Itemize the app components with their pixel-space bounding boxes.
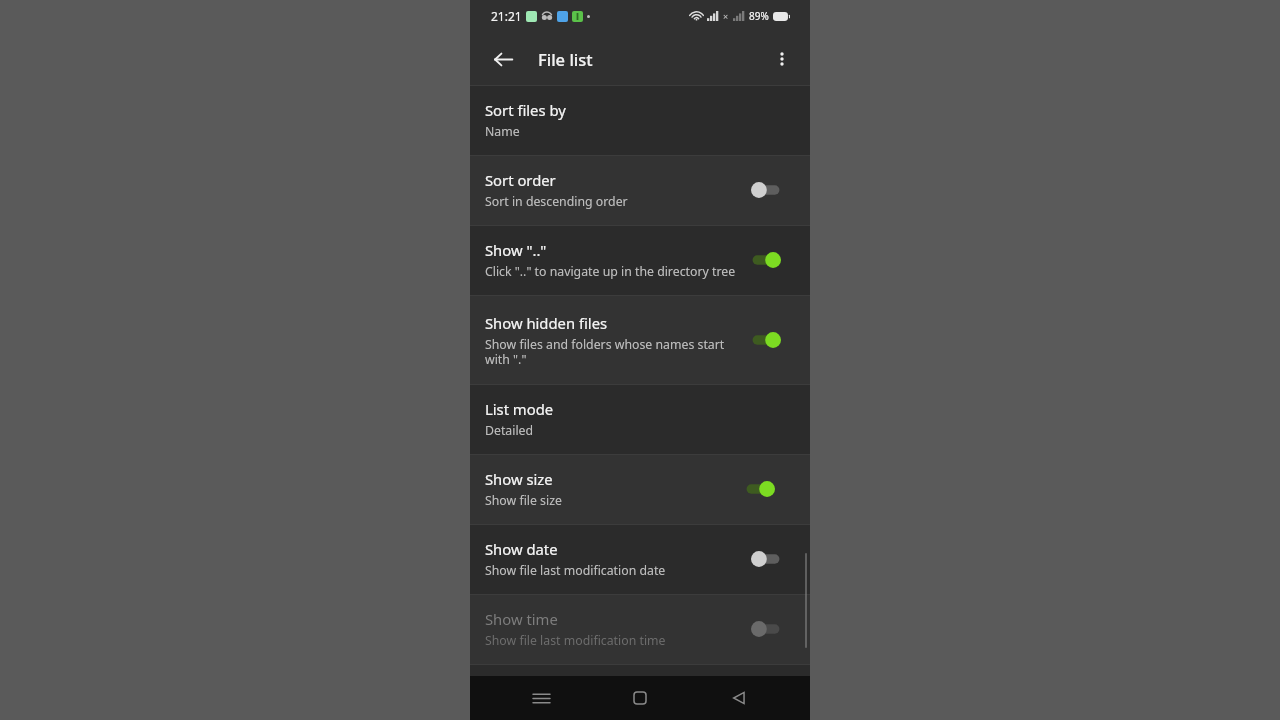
button[interactable]: Sort order [470, 155, 810, 225]
button[interactable]: Show ".." [470, 225, 810, 295]
button[interactable]: Home [612, 678, 668, 718]
staticText: Show file last modification date [485, 562, 666, 579]
button[interactable]: Recent apps [513, 678, 569, 718]
staticText: 89% [749, 9, 769, 23]
button[interactable]: Sort files by [470, 85, 810, 155]
staticText: Show file last modification time [485, 632, 666, 649]
button[interactable]: Show hidden files [470, 295, 810, 384]
button[interactable]: List mode [470, 384, 810, 454]
staticText: Show ".." [485, 240, 547, 260]
staticText: 21:21 [491, 8, 522, 24]
button[interactable]: Show time [744, 612, 788, 646]
staticText: Show time [485, 609, 558, 629]
staticText: File list [538, 48, 593, 70]
button[interactable]: More options [762, 39, 802, 79]
staticText: × [723, 10, 729, 22]
button[interactable]: Show date [744, 542, 788, 576]
button[interactable]: Show size [738, 472, 782, 506]
staticText: Show date [485, 539, 558, 559]
staticText: Show files and folders whose names start… [485, 336, 736, 367]
staticText: List mode [485, 399, 554, 419]
staticText: Sort order [485, 170, 556, 190]
button[interactable]: Show date [470, 524, 810, 594]
staticText: Sort files by [485, 100, 566, 120]
staticText: Sort in descending order [485, 193, 628, 210]
staticText: Detailed [485, 422, 534, 439]
staticText: Show file size [485, 492, 562, 509]
button[interactable]: Sort order [744, 173, 788, 207]
staticText: Name [485, 123, 520, 140]
button[interactable]: Show hidden files [744, 323, 788, 357]
staticText: Show hidden files [485, 313, 608, 333]
button[interactable]: Back [482, 38, 524, 80]
button[interactable]: Show size [470, 454, 810, 524]
staticText: Show size [485, 469, 553, 489]
button[interactable]: Show ".." [744, 243, 788, 277]
button[interactable]: Show time [470, 594, 810, 664]
button[interactable]: Back [711, 678, 767, 718]
staticText: Click ".." to navigate up in the directo… [485, 263, 736, 280]
